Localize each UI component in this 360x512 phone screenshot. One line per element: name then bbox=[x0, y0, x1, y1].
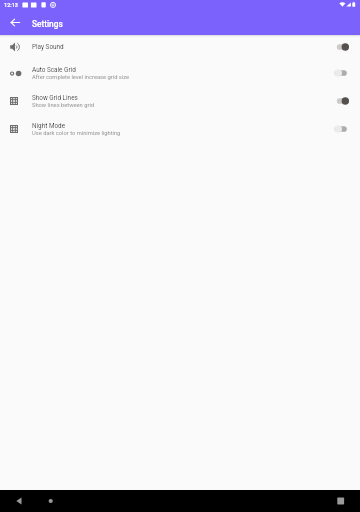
staticText: Auto Scale Grid bbox=[32, 66, 76, 74]
staticText: Show Grid Lines bbox=[32, 94, 78, 102]
button[interactable]: Night Mode toggle bbox=[334, 124, 349, 134]
button[interactable]: Recent apps bbox=[330, 490, 352, 512]
button[interactable]: Show Grid Lines bbox=[0, 87, 360, 115]
button[interactable]: Auto Scale Grid toggle bbox=[334, 68, 349, 78]
button[interactable]: Play Sound toggle bbox=[334, 42, 349, 52]
staticText: Night Mode bbox=[32, 122, 66, 130]
button[interactable]: Back bbox=[5, 12, 25, 32]
staticText: After complete level increase grid size bbox=[32, 74, 130, 81]
staticText: Use dark color to minimize lighting bbox=[32, 130, 121, 137]
button[interactable]: Back bbox=[8, 490, 30, 512]
staticText: Show lines between grid bbox=[32, 102, 95, 109]
staticText: Play Sound bbox=[32, 43, 64, 51]
button[interactable]: Home bbox=[40, 490, 62, 512]
button[interactable]: Night Mode bbox=[0, 115, 360, 143]
button[interactable]: Auto Scale Grid bbox=[0, 59, 360, 87]
staticText: Settings bbox=[32, 19, 63, 29]
button[interactable]: Play Sound bbox=[0, 35, 360, 59]
staticText: 12:13 bbox=[4, 2, 18, 8]
button[interactable]: Show Grid Lines toggle bbox=[334, 96, 349, 106]
